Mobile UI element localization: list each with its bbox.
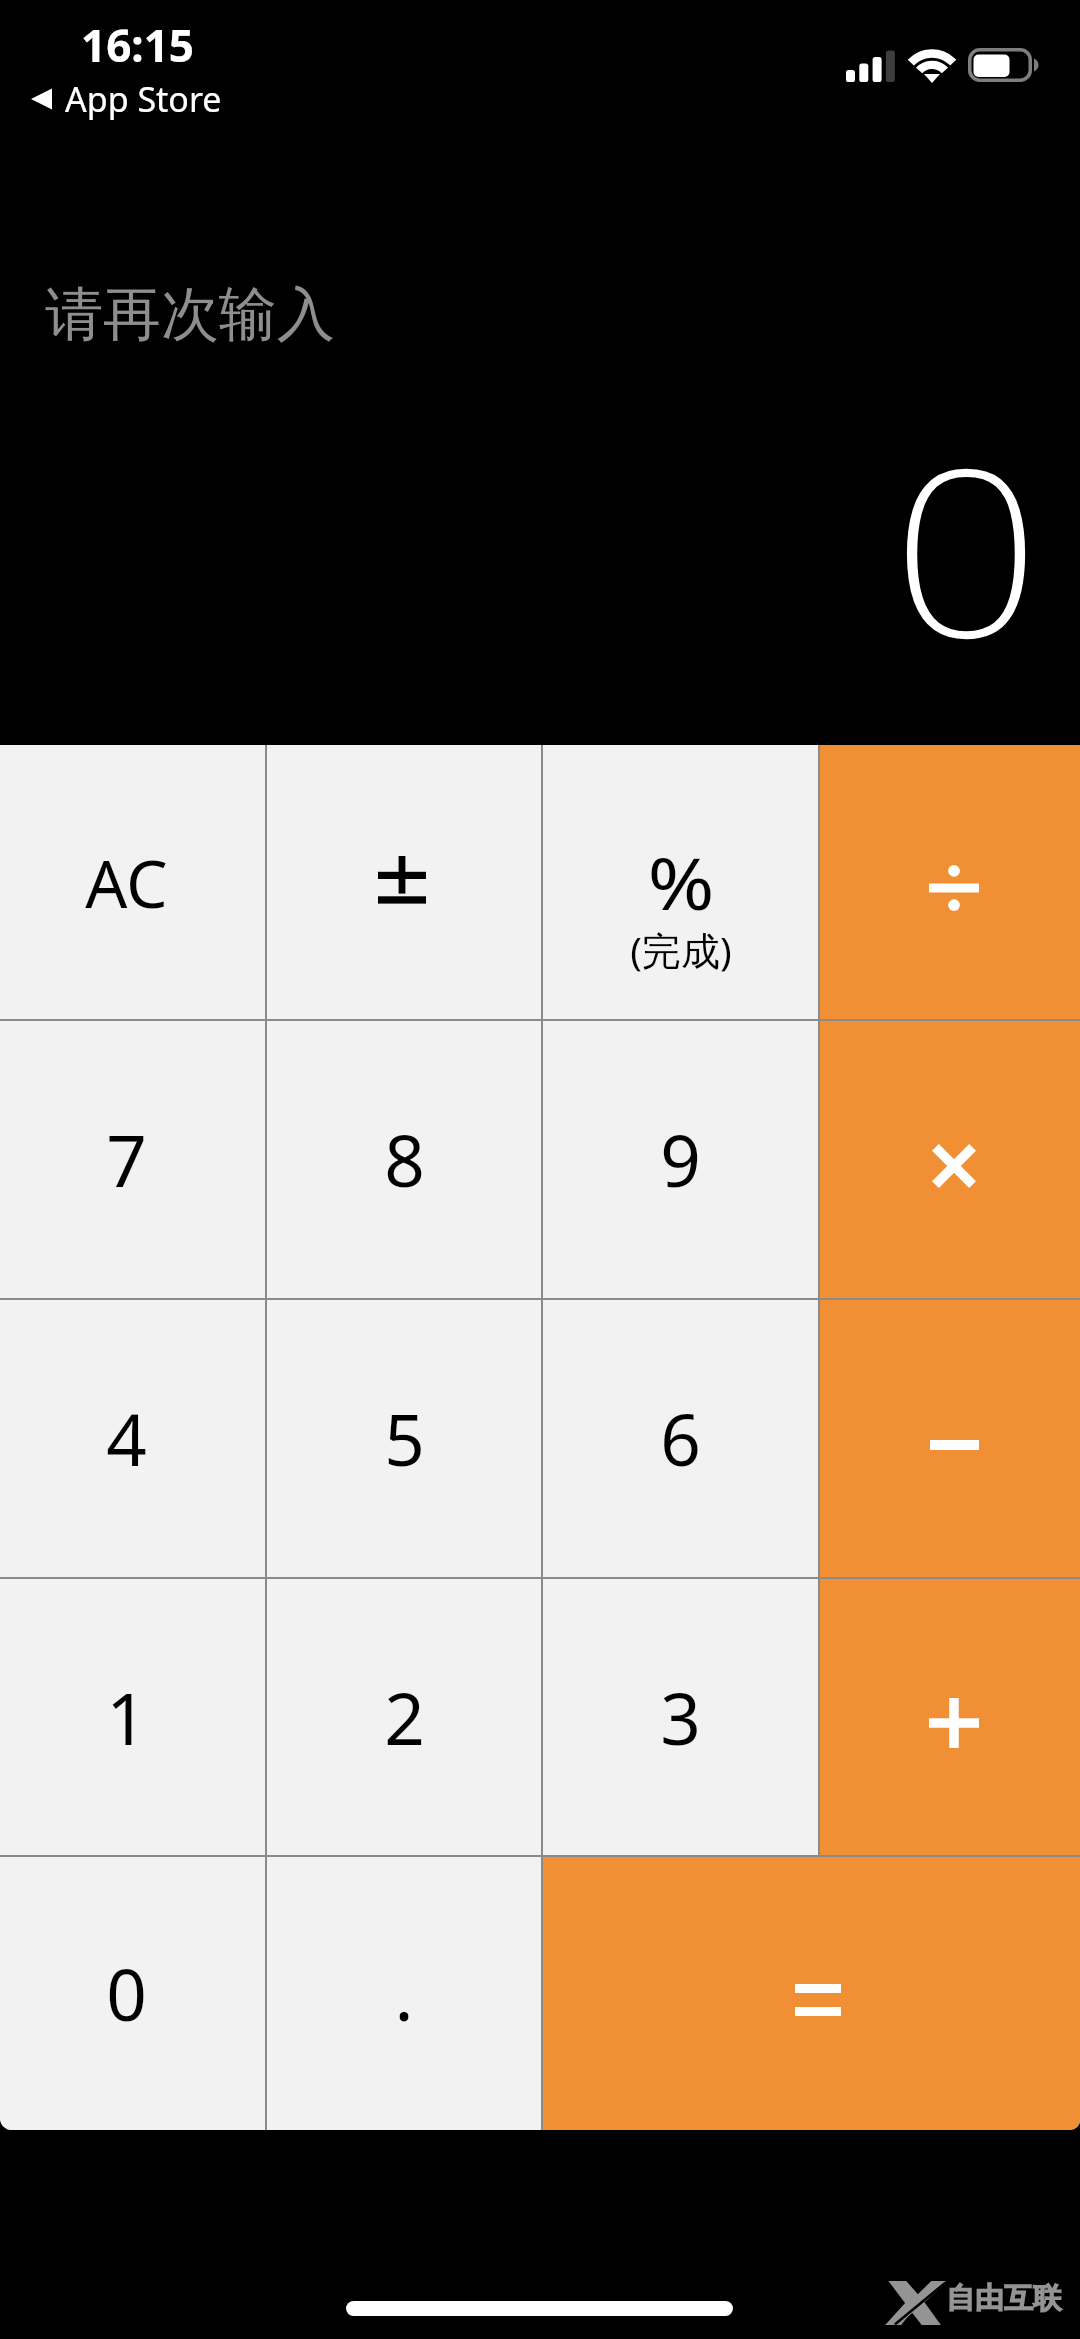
staticText: 4 bbox=[106, 1390, 147, 1487]
button[interactable]: Divide bbox=[820, 745, 1080, 1019]
staticText: App Store bbox=[65, 76, 222, 122]
staticText: 7 bbox=[106, 1111, 147, 1208]
staticText: 自由互联 bbox=[946, 2280, 1062, 2317]
button[interactable]: 0 bbox=[0, 1857, 265, 2130]
staticText: AC bbox=[85, 837, 168, 927]
staticText: 0 bbox=[891, 389, 1042, 705]
button[interactable]: % bbox=[543, 745, 818, 1019]
button[interactable]: 2 bbox=[267, 1579, 541, 1855]
button[interactable]: Equals bbox=[543, 1857, 1080, 2130]
staticText: 5 bbox=[384, 1390, 425, 1487]
staticText: 0 bbox=[106, 1945, 147, 2042]
staticText: 1 bbox=[106, 1669, 147, 1766]
button[interactable]: AC bbox=[0, 745, 265, 1019]
button[interactable]: 3 bbox=[543, 1579, 818, 1855]
staticText: 3 bbox=[660, 1669, 701, 1766]
button[interactable]: 5 bbox=[267, 1300, 541, 1577]
button[interactable]: Back to App Store bbox=[31, 76, 222, 122]
button[interactable]: 1 bbox=[0, 1579, 265, 1855]
staticText: 9 bbox=[660, 1111, 701, 1208]
button[interactable]: Plus minus bbox=[267, 745, 541, 1019]
button[interactable]: 6 bbox=[543, 1300, 818, 1577]
button[interactable]: Subtract bbox=[820, 1300, 1080, 1577]
button[interactable]: . bbox=[267, 1857, 541, 2130]
staticText: 2 bbox=[384, 1669, 425, 1766]
staticText: 8 bbox=[384, 1111, 425, 1208]
button[interactable]: Add bbox=[820, 1579, 1080, 1855]
button[interactable]: 4 bbox=[0, 1300, 265, 1577]
button[interactable]: 7 bbox=[0, 1021, 265, 1298]
button[interactable]: 8 bbox=[267, 1021, 541, 1298]
staticText: 请再次输入 bbox=[45, 278, 335, 351]
button[interactable]: Multiply bbox=[820, 1021, 1080, 1298]
staticText: (完成) bbox=[630, 923, 732, 976]
staticText: 16:15 bbox=[81, 15, 195, 75]
staticText: . bbox=[394, 1945, 414, 2042]
staticText: % bbox=[647, 833, 715, 931]
staticText: 6 bbox=[660, 1390, 701, 1487]
button[interactable]: 9 bbox=[543, 1021, 818, 1298]
